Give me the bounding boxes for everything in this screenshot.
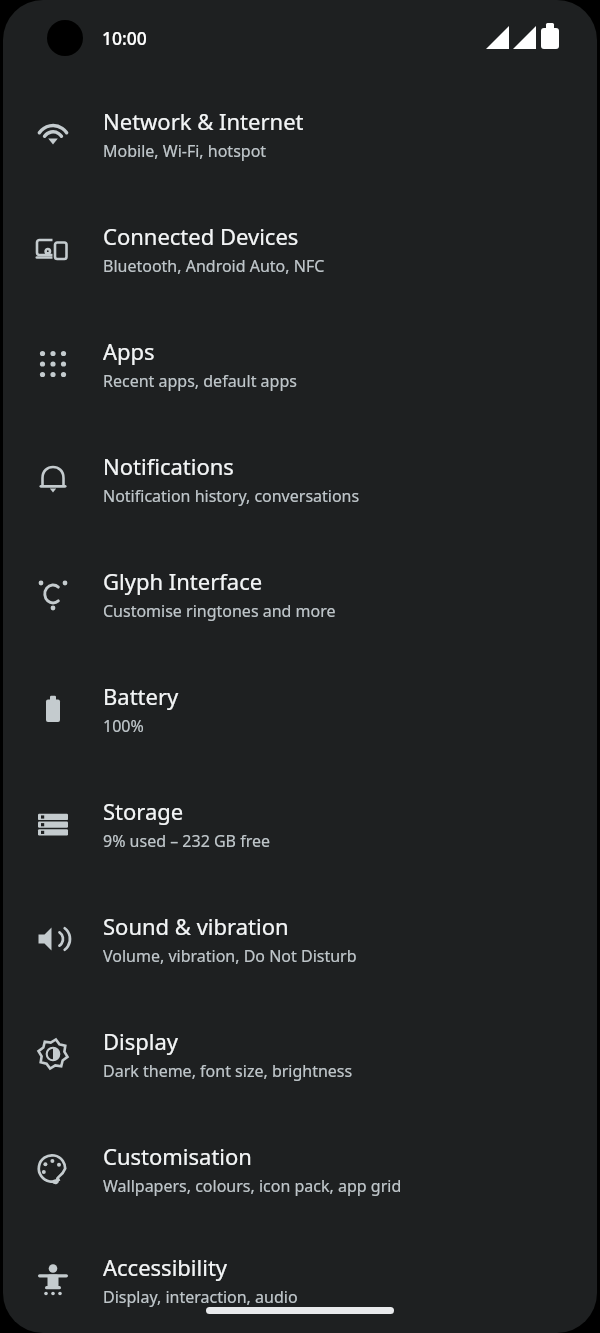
- button[interactable]: Glyph Interface: [3, 536, 597, 651]
- button[interactable]: Display: [3, 996, 597, 1111]
- staticText: Apps: [103, 336, 155, 366]
- staticText: Battery: [103, 681, 179, 711]
- other: Connected Devices: [3, 191, 103, 306]
- button[interactable]: Network & Internet: [3, 76, 597, 191]
- staticText: 10:00: [102, 26, 147, 50]
- staticText: Network & Internet: [103, 106, 304, 136]
- staticText: Notifications: [103, 451, 234, 481]
- button[interactable]: Storage: [3, 766, 597, 881]
- button[interactable]: Notifications: [3, 421, 597, 536]
- staticText: Wallpapers, colours, icon pack, app grid: [103, 1175, 402, 1197]
- staticText: 100%: [103, 715, 144, 737]
- other: Sound & vibration: [3, 881, 103, 996]
- staticText: Connected Devices: [103, 221, 299, 251]
- staticText: 9% used – 232 GB free: [103, 830, 271, 852]
- staticText: Volume, vibration, Do Not Disturb: [103, 945, 357, 967]
- staticText: Bluetooth, Android Auto, NFC: [103, 255, 325, 277]
- staticText: Display: [103, 1026, 179, 1056]
- other: Network & Internet: [3, 76, 103, 191]
- staticText: Storage: [103, 796, 184, 826]
- staticText: Customisation: [103, 1141, 252, 1171]
- staticText: Accessibility: [103, 1252, 228, 1282]
- other: Glyph Interface: [3, 536, 103, 651]
- other: Notifications: [3, 421, 103, 536]
- staticText: Glyph Interface: [103, 566, 263, 596]
- other: Display: [3, 996, 103, 1111]
- staticText: Mobile, Wi-Fi, hotspot: [103, 140, 267, 162]
- button[interactable]: Apps: [3, 306, 597, 421]
- staticText: Customise ringtones and more: [103, 600, 336, 622]
- button[interactable]: Customisation: [3, 1111, 597, 1226]
- other: Accessibility: [3, 1226, 103, 1333]
- button[interactable]: Accessibility: [3, 1226, 597, 1333]
- staticText: Sound & vibration: [103, 911, 289, 941]
- staticText: Notification history, conversations: [103, 485, 360, 507]
- other: Battery: [3, 651, 103, 766]
- other: Apps: [3, 306, 103, 421]
- button[interactable]: Connected Devices: [3, 191, 597, 306]
- button[interactable]: Sound & vibration: [3, 881, 597, 996]
- other: Customisation: [3, 1111, 103, 1226]
- staticText: Display, interaction, audio: [103, 1286, 298, 1308]
- other: Storage: [3, 766, 103, 881]
- staticText: Dark theme, font size, brightness: [103, 1060, 353, 1082]
- staticText: Recent apps, default apps: [103, 370, 297, 392]
- button[interactable]: Battery: [3, 651, 597, 766]
